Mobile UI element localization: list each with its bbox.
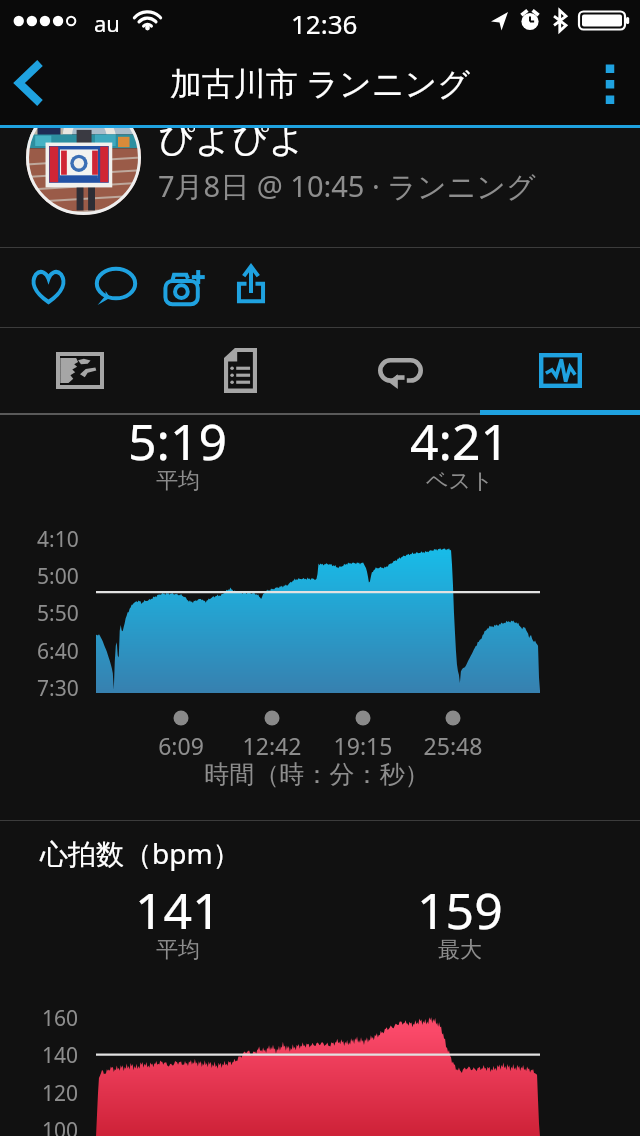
staticText: 120 — [42, 1079, 79, 1108]
staticText: 4:10 — [37, 525, 79, 554]
staticText: 加古川市 ランニング — [170, 61, 471, 105]
button[interactable]: ぴよぴよ — [0, 128, 640, 247]
staticText: 6:09 — [121, 730, 241, 761]
button[interactable]: More options — [580, 40, 640, 125]
staticText: au — [94, 8, 120, 38]
staticText: 最大 — [438, 936, 482, 964]
staticText: 5:19 — [128, 407, 228, 475]
staticText: 141 — [135, 876, 221, 944]
staticText: 7:30 — [37, 674, 79, 703]
staticText: 100 — [42, 1116, 79, 1136]
staticText: 4:21 — [410, 407, 510, 475]
staticText: ベスト — [426, 467, 494, 495]
staticText: 平均 — [156, 936, 200, 964]
button[interactable]: Laps — [320, 328, 480, 413]
staticText: 160 — [42, 1004, 79, 1033]
button[interactable]: Comment — [82, 248, 150, 327]
staticText: 140 — [42, 1041, 79, 1070]
staticText: 25:48 — [393, 730, 513, 761]
staticText: 5:00 — [37, 562, 79, 591]
button[interactable]: Share — [217, 248, 285, 327]
staticText: 6:40 — [37, 637, 79, 666]
staticText: 12:42 — [212, 730, 332, 761]
button[interactable]: Splits — [160, 328, 320, 413]
staticText: 159 — [417, 876, 503, 944]
button[interactable]: Like — [14, 248, 82, 327]
staticText: 7月8日 @ 10:45 · ランニング — [158, 166, 536, 206]
button[interactable]: Back — [0, 40, 70, 125]
staticText: ぴよぴよ — [158, 128, 306, 161]
staticText: 19:15 — [303, 730, 423, 761]
button[interactable]: Map — [0, 328, 160, 413]
button[interactable]: Analysis — [480, 328, 640, 413]
button[interactable]: Add photo — [151, 248, 219, 327]
staticText: 12:36 — [291, 6, 358, 41]
staticText: 5:50 — [37, 599, 79, 628]
staticText: 時間（時：分：秒） — [0, 759, 637, 790]
staticText: 平均 — [156, 467, 200, 495]
staticText: 心拍数（bpm） — [40, 834, 241, 872]
